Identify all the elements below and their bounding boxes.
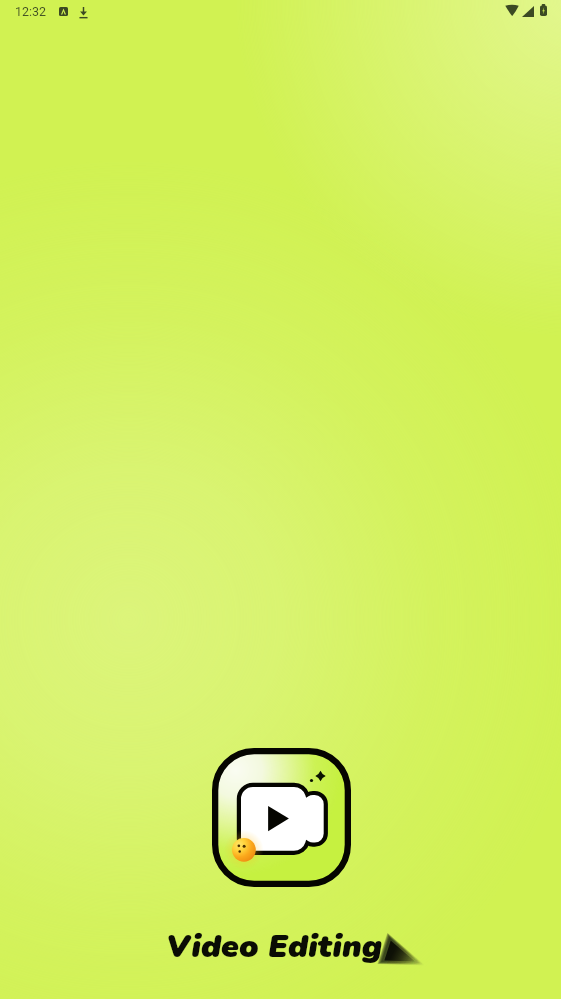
button[interactable]: Video Editing <box>166 744 396 976</box>
staticText: Video Editing <box>166 925 383 969</box>
staticText: 12:32 <box>15 4 47 19</box>
